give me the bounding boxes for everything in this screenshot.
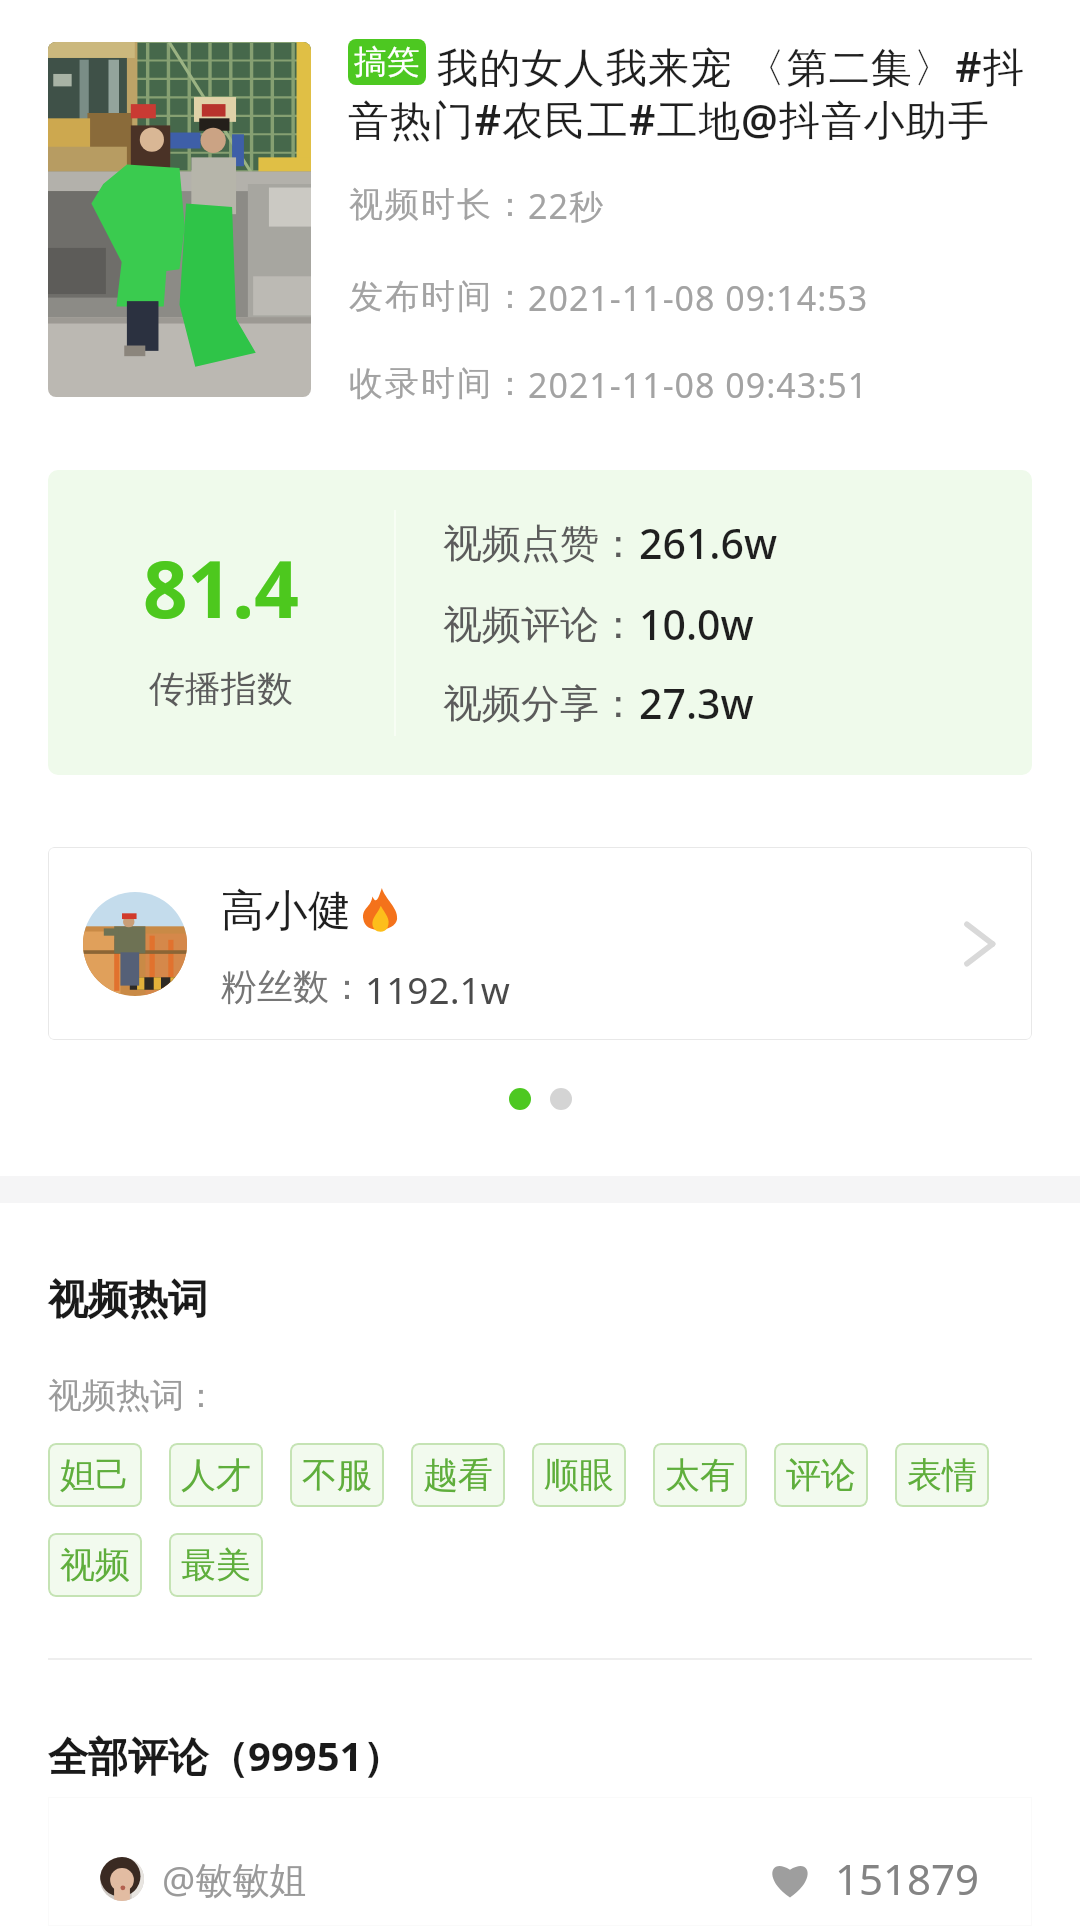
staticText: 151879 [835,1850,980,1907]
staticText: 收录时间： [348,362,528,405]
staticText: 人才 [181,1453,251,1497]
staticText: 22秒 [528,183,604,229]
staticText: 261.6w [639,515,778,571]
button[interactable]: 搞笑 [0,0,1080,423]
button[interactable]: Page 1 [509,1088,531,1110]
staticText: 发布时间： [348,275,528,318]
staticText: 音热门#农民工#工地@抖音小助手 [348,91,990,147]
staticText: 2021-11-08 09:43:51 [528,362,869,408]
staticText: 视频 [60,1543,130,1587]
staticText: 视频点赞： [443,519,638,568]
other: Open author [954,921,1000,967]
button[interactable]: 妲己 [48,1443,142,1507]
button[interactable]: 评论 [774,1443,868,1507]
staticText: 妲己 [60,1453,130,1497]
staticText: @敏敏姐 [162,1853,307,1904]
staticText: 2021-11-08 09:14:53 [528,275,869,321]
staticText: 视频热词 [48,1274,208,1324]
staticText: 粉丝数： [221,964,365,1009]
button[interactable]: 顺眼 [532,1443,626,1507]
staticText: 不服 [302,1453,372,1497]
button[interactable]: 高小健 [48,847,1032,1040]
staticText: 全部评论（99951） [48,1728,403,1783]
staticText: 传播指数 [149,666,293,711]
staticText: 顺眼 [544,1453,614,1497]
button[interactable]: 太有 [653,1443,747,1507]
staticText: 我的女人我来宠 〈第二集〉#抖 [437,38,1026,94]
staticText: 27.3w [639,675,754,731]
button[interactable]: 视频 [48,1533,142,1597]
staticText: 81.4 [143,535,299,641]
staticText: 太有 [665,1453,735,1497]
staticText: 1192.1w [365,964,510,1014]
staticText: 视频热词： [48,1374,218,1417]
staticText: 评论 [786,1453,856,1497]
button[interactable]: 不服 [290,1443,384,1507]
staticText: 视频分享： [443,679,638,728]
button[interactable]: Like [767,1856,813,1902]
button[interactable]: 表情 [895,1443,989,1507]
button[interactable]: 越看 [411,1443,505,1507]
staticText: 高小健 [221,884,352,938]
staticText: 最美 [181,1543,251,1587]
button[interactable]: 人才 [169,1443,263,1507]
staticText: 视频评论： [443,600,638,649]
button[interactable]: Page 2 [550,1088,572,1110]
button[interactable]: @敏敏姐 [48,1797,1032,1907]
button[interactable]: 最美 [169,1533,263,1597]
staticText: 越看 [423,1453,493,1497]
staticText: 搞笑 [354,41,420,83]
staticText: 视频时长： [348,183,528,226]
staticText: 10.0w [639,596,754,652]
staticText: 表情 [907,1453,977,1497]
